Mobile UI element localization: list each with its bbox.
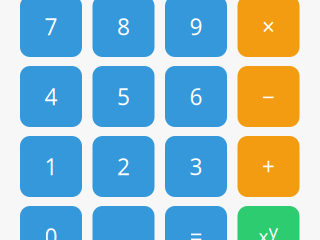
button[interactable]: Add	[237, 136, 299, 197]
staticText: 6	[189, 81, 202, 111]
button[interactable]: x to the power of y	[237, 206, 299, 240]
staticText: ×	[262, 11, 275, 41]
button[interactable]: Decimal point	[92, 206, 154, 240]
button[interactable]: 7	[20, 0, 82, 57]
button[interactable]: 2	[92, 136, 154, 197]
staticText: 9	[189, 11, 202, 41]
button[interactable]: 5	[92, 66, 154, 127]
button[interactable]: 6	[165, 66, 227, 127]
staticText: 5	[117, 81, 130, 111]
staticText: 3	[189, 151, 202, 181]
button[interactable]: 1	[20, 136, 82, 197]
staticText: 7	[44, 11, 57, 41]
button[interactable]: 9	[165, 0, 227, 57]
staticText: 1	[44, 151, 57, 181]
staticText: =	[189, 221, 202, 240]
staticText: −	[262, 81, 275, 111]
button[interactable]: 3	[165, 136, 227, 197]
button[interactable]: Equals	[165, 206, 227, 240]
staticText: +	[262, 151, 275, 181]
button[interactable]: Subtract	[237, 66, 299, 127]
button[interactable]: Multiply	[237, 0, 299, 57]
staticText: x	[258, 224, 268, 240]
staticText: 2	[117, 151, 130, 181]
button[interactable]: 8	[92, 0, 154, 57]
button[interactable]: 0	[20, 206, 82, 240]
staticText: 4	[44, 81, 57, 111]
staticText: 0	[44, 221, 57, 240]
button[interactable]: 4	[20, 66, 82, 127]
staticText: 8	[117, 11, 130, 41]
staticText: y	[268, 219, 278, 240]
